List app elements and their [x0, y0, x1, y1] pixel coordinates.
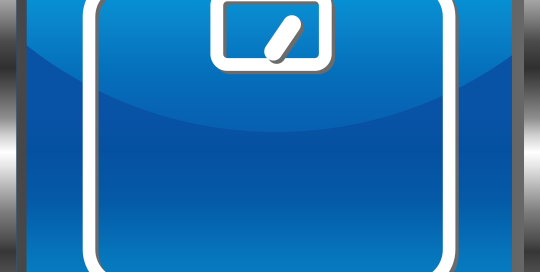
button[interactable]: Compose	[0, 0, 540, 272]
